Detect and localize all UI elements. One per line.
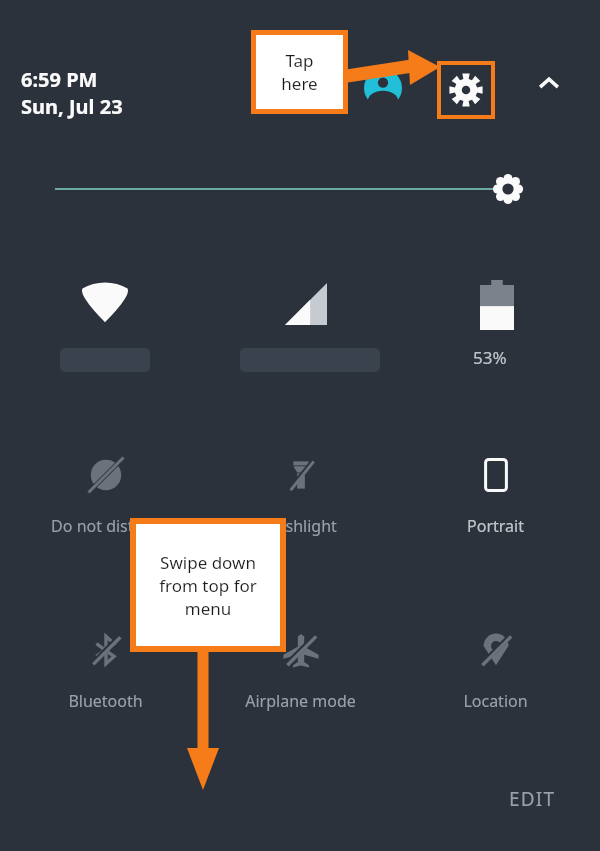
- button[interactable]: Portrait: [418, 455, 573, 555]
- staticText: Do not disturb: [51, 515, 160, 537]
- button[interactable]: Do not disturb: [28, 455, 183, 555]
- button[interactable]: Location: [418, 630, 573, 730]
- staticText: Tap here: [281, 49, 318, 95]
- staticText: 6:59 PM: [21, 66, 98, 93]
- staticText: Location: [463, 690, 528, 712]
- staticText: Bluetooth: [68, 690, 143, 712]
- button[interactable]: Settings: [437, 61, 495, 119]
- staticText: Sun, Jul 23: [21, 93, 123, 120]
- button[interactable]: Bluetooth: [28, 630, 183, 730]
- button[interactable]: Airplane mode: [223, 630, 378, 730]
- staticText: Airplane mode: [245, 690, 356, 712]
- staticText: Portrait: [467, 515, 524, 537]
- button[interactable]: Brightness: [40, 160, 560, 218]
- staticText: 53%: [473, 346, 507, 369]
- staticText: Swipe down from top for menu: [159, 551, 257, 620]
- button[interactable]: EDIT: [490, 778, 575, 820]
- button[interactable]: Wi-Fi: [45, 268, 165, 383]
- button[interactable]: User account: [364, 69, 402, 107]
- button[interactable]: Battery 53 percent: [440, 268, 555, 383]
- button[interactable]: Mobile signal: [240, 268, 380, 383]
- button[interactable]: Flashlight: [223, 455, 378, 555]
- staticText: EDIT: [509, 786, 556, 812]
- button[interactable]: Collapse: [528, 63, 570, 105]
- staticText: Flashlight: [264, 515, 337, 537]
